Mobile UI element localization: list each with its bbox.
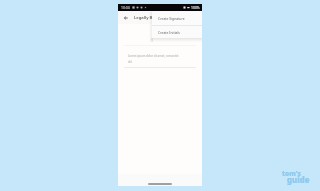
button[interactable]: Back [122, 14, 130, 22]
staticText: Legally Bin [134, 15, 157, 21]
staticText: 100% [191, 5, 200, 10]
staticText: tom's [282, 169, 301, 178]
staticText: Create Initials [158, 30, 180, 35]
staticText: Create Signature [158, 16, 185, 21]
staticText: elit [128, 60, 133, 64]
staticText: Lorem ipsum dolor sit amet, consectet [128, 54, 179, 58]
button[interactable]: Create Signature [152, 12, 202, 25]
staticText: guide [287, 175, 310, 186]
staticText: 10:04 [121, 5, 130, 10]
button[interactable]: Create Initials [152, 26, 202, 38]
